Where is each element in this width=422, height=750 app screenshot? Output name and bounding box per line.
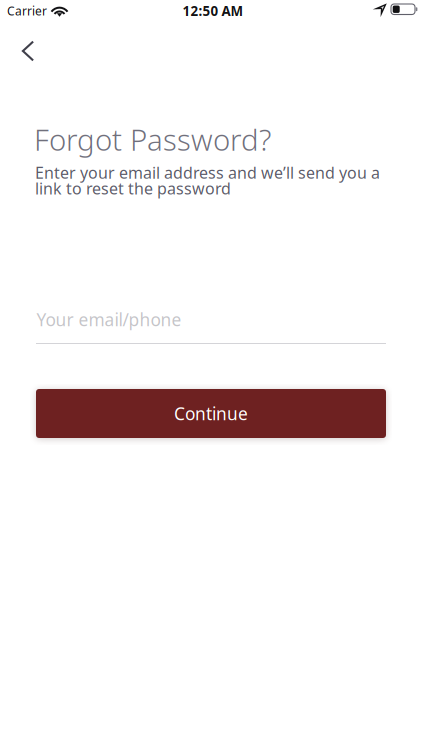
staticText: Carrier	[7, 3, 47, 19]
staticText: link to reset the password	[35, 178, 231, 199]
staticText: Enter your email address and we’ll send …	[35, 162, 380, 183]
button[interactable]: Continue	[36, 389, 386, 438]
button[interactable]: Your email/phone	[36, 308, 386, 344]
staticText: Forgot Password?	[34, 120, 271, 159]
staticText: Continue	[174, 402, 248, 425]
button[interactable]: Back	[6, 29, 50, 73]
staticText: Your email/phone	[36, 308, 181, 331]
staticText: 12:50 AM	[182, 2, 243, 20]
